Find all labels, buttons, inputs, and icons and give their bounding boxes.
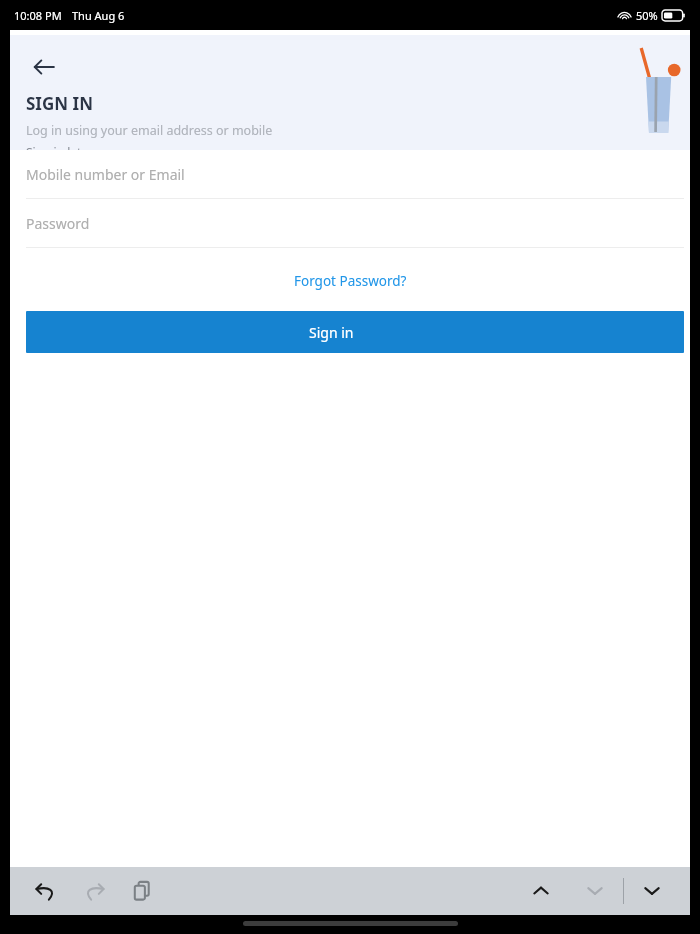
button[interactable]: Next field disabled [575, 871, 615, 911]
button[interactable]: Sign in later [26, 144, 94, 150]
button[interactable]: Mobile number or Email [10, 150, 690, 199]
staticText: Mobile number or Email [26, 165, 185, 184]
staticText: 50% [636, 8, 658, 23]
button[interactable]: Hide keyboard [632, 871, 672, 911]
button[interactable]: Password [10, 199, 690, 248]
staticText: Forgot Password? [294, 272, 407, 290]
button[interactable]: Back [26, 49, 62, 85]
staticText: Sign in later [26, 144, 94, 150]
button[interactable]: Sign in [26, 311, 684, 353]
button[interactable]: Previous field [521, 871, 561, 911]
button[interactable]: Undo [26, 871, 66, 911]
button[interactable]: Redo [74, 871, 114, 911]
staticText: Sign in [309, 323, 354, 342]
button[interactable]: Paste [122, 871, 162, 911]
staticText: Log in using your email address or mobil… [26, 122, 273, 139]
staticText: SIGN IN [26, 92, 93, 115]
staticText: Password [26, 214, 90, 233]
staticText: 10:08 PM [14, 8, 62, 23]
staticText: Thu Aug 6 [72, 8, 125, 23]
button[interactable]: Forgot Password? [10, 264, 690, 297]
